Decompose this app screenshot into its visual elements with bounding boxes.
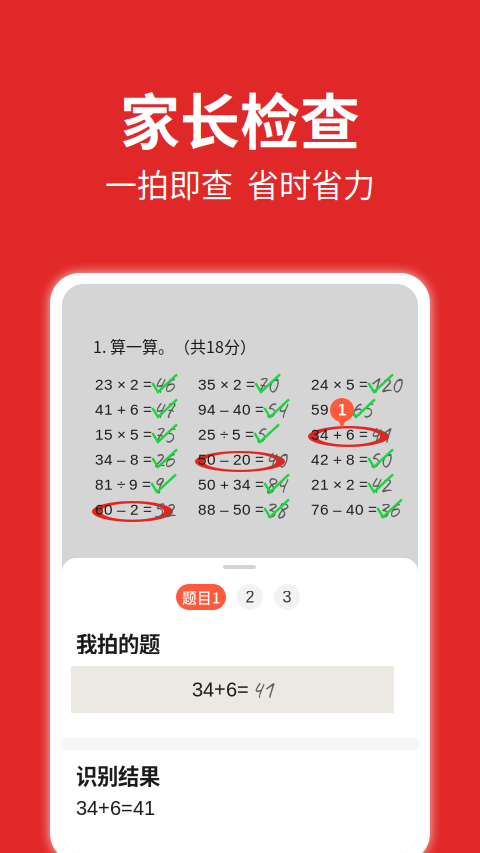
staticText: 一拍即查 省时省力 — [105, 160, 375, 206]
staticText: 50 — [368, 443, 390, 475]
staticText: 54 — [264, 393, 286, 425]
staticText: 家长检查 — [120, 75, 360, 161]
staticText: 60 – 2 = — [95, 501, 152, 518]
staticText: 50 – 20 = — [198, 451, 264, 468]
staticText: 34 + 6 = — [311, 426, 368, 443]
staticText: 88 – 50 = — [198, 501, 264, 518]
staticText: 23 × 2 = — [95, 376, 152, 393]
staticText: 34 – 8 = — [95, 451, 152, 468]
staticText: 9 — [151, 468, 162, 500]
staticText: 我拍的题 — [76, 628, 160, 658]
staticText: 15 × 5 = — [95, 426, 152, 443]
staticText: 75 — [152, 418, 174, 450]
staticText: 3 — [282, 588, 291, 606]
button[interactable]: 2 — [237, 584, 263, 610]
staticText: 81 ÷ 9 = — [95, 476, 151, 493]
staticText: 24 × 5 = — [311, 376, 368, 393]
staticText: 38 — [264, 493, 286, 525]
staticText: 1 — [337, 401, 346, 419]
staticText: 5 — [254, 418, 265, 450]
staticText: 120 — [368, 368, 401, 400]
staticText: 34+6=41 — [76, 797, 155, 819]
staticText: 41 + 6 = — [95, 401, 152, 418]
staticText: 42 — [368, 468, 390, 500]
staticText: 50 + 34 = — [198, 476, 264, 493]
staticText: 59 = — [311, 401, 350, 418]
staticText: 65 — [350, 393, 372, 425]
button[interactable]: 3 — [274, 584, 300, 610]
staticText: 94 – 40 = — [198, 401, 264, 418]
staticText: 70 — [255, 368, 277, 400]
staticText: 41 — [368, 418, 390, 450]
staticText: 题目1 — [182, 586, 220, 608]
staticText: 21 × 2 = — [311, 476, 368, 493]
staticText: 识别结果 — [76, 760, 160, 790]
staticText: 26 — [152, 443, 174, 475]
staticText: 41 — [251, 673, 273, 705]
staticText: 52 — [152, 493, 174, 525]
staticText: 35 × 2 = — [198, 376, 255, 393]
staticText: 47 — [152, 393, 174, 425]
staticText: 1. 算一算。（共18分） — [93, 334, 256, 358]
staticText: 36 — [377, 493, 399, 525]
staticText: 25 ÷ 5 = — [198, 426, 254, 443]
staticText: 2 — [245, 588, 254, 606]
staticText: 40 — [264, 443, 286, 475]
staticText: 46 — [152, 368, 174, 400]
staticText: 76 – 40 = — [311, 501, 377, 518]
button[interactable]: 题目1 — [176, 584, 226, 610]
staticText: 34+6= — [192, 678, 249, 701]
staticText: 42 + 8 = — [311, 451, 368, 468]
staticText: 84 — [264, 468, 286, 500]
